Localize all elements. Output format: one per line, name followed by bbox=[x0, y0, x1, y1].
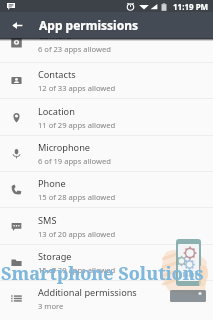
staticText: 12 of 33 apps allowed bbox=[38, 83, 116, 93]
staticText: SMS bbox=[38, 214, 57, 227]
button[interactable]: SMS bbox=[0, 208, 213, 244]
button[interactable]: Phone bbox=[0, 172, 213, 207]
button[interactable]: Microphone bbox=[0, 136, 213, 171]
staticText: Location bbox=[38, 105, 75, 118]
staticText: Phone bbox=[38, 177, 66, 190]
button[interactable]: Additional permissions bbox=[0, 281, 213, 316]
staticText: Smartphone Solutions bbox=[1, 261, 204, 286]
button[interactable]: Location bbox=[0, 99, 213, 135]
staticText: 13 of 20 apps allowed bbox=[38, 229, 116, 239]
staticText: Additional permissions bbox=[38, 286, 137, 299]
staticText: 6 of 23 apps allowed bbox=[38, 44, 111, 54]
staticText: 15 of 39 apps allowed bbox=[38, 265, 116, 275]
button[interactable]: Contacts bbox=[0, 63, 213, 98]
staticText: 3 more bbox=[38, 301, 64, 311]
button[interactable]: Camera bbox=[0, 25, 213, 62]
staticText: Contacts bbox=[38, 68, 76, 81]
button[interactable]: Storage bbox=[0, 245, 213, 280]
staticText: 11:19 PM bbox=[173, 1, 209, 12]
staticText: 6 of 19 apps allowed bbox=[38, 156, 111, 166]
staticText: Storage bbox=[38, 250, 72, 263]
button[interactable]: Back bbox=[4, 12, 30, 38]
staticText: Camera bbox=[38, 29, 72, 42]
staticText: Microphone bbox=[38, 141, 91, 154]
staticText: App permissions bbox=[39, 17, 138, 33]
staticText: 15 of 28 apps allowed bbox=[38, 192, 116, 202]
staticText: 11 of 29 apps allowed bbox=[38, 120, 116, 130]
